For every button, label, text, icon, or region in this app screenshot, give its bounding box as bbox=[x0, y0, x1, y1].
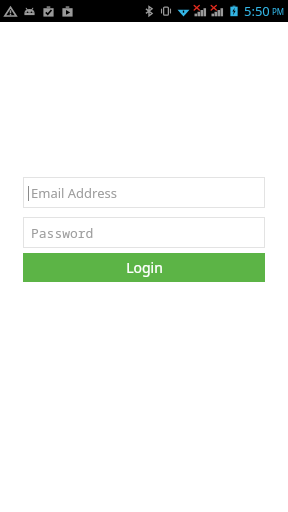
staticText: PM bbox=[272, 6, 285, 17]
staticText: Password bbox=[31, 224, 94, 242]
button[interactable]: Password bbox=[23, 217, 265, 248]
button[interactable]: Email Address bbox=[23, 177, 265, 208]
staticText: Login bbox=[126, 258, 163, 277]
button[interactable]: Login bbox=[23, 253, 265, 282]
staticText: Email Address bbox=[31, 184, 117, 202]
staticText: 5:50 bbox=[244, 2, 270, 20]
